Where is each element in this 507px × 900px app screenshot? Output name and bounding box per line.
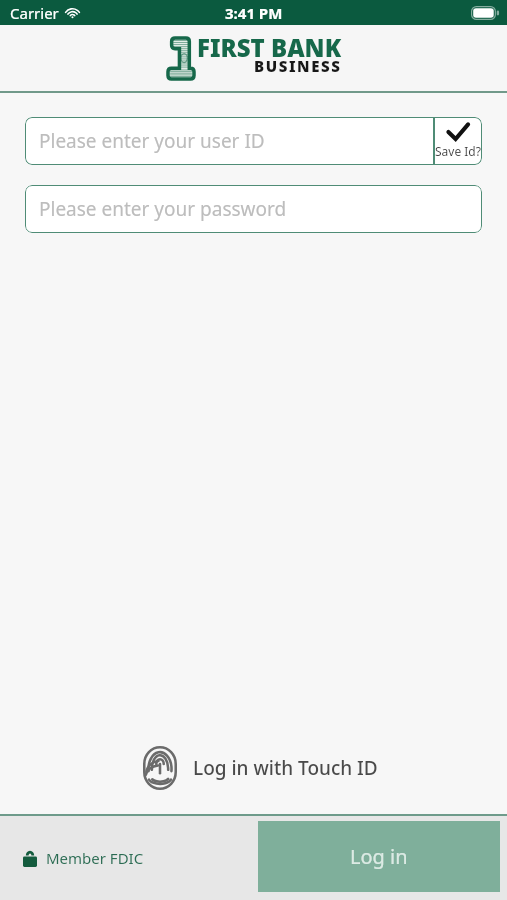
staticText: Member FDIC [46, 848, 144, 868]
staticText: FIRST BANK [197, 31, 342, 64]
staticText: 3:41 PM [225, 3, 283, 23]
staticText: Please enter your password [39, 196, 287, 222]
button[interactable]: Please enter your user ID [25, 117, 434, 165]
staticText: BUSINESS [254, 56, 342, 76]
staticText: Save Id? [435, 143, 481, 159]
button[interactable]: Please enter your password [25, 185, 482, 233]
staticText: Log in with Touch ID [193, 755, 378, 781]
staticText: Carrier [10, 3, 59, 23]
button[interactable]: Save Id [434, 117, 482, 165]
button[interactable]: Log in [258, 821, 500, 892]
button[interactable]: Log in with Touch ID [143, 742, 378, 794]
staticText: Log in [350, 843, 408, 870]
staticText: Please enter your user ID [39, 128, 265, 154]
button[interactable]: Member FDIC [23, 848, 144, 868]
